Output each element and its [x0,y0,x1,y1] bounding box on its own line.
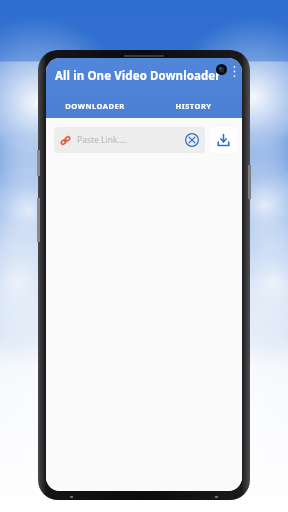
button[interactable]: Clear [185,133,199,147]
staticText: All in One Video Downloader [55,68,221,84]
staticText: Paste Link.... [77,134,127,146]
staticText: HISTORY [175,101,212,111]
staticText: DOWNLOADER [65,101,125,111]
button[interactable]: All in One Video Downloader [46,58,242,94]
button[interactable]: More options [226,60,242,82]
button[interactable]: DOWNLOADER [46,94,144,118]
button[interactable]: Paste Link.... [54,127,205,153]
button[interactable]: Download [210,127,236,153]
button[interactable]: HISTORY [144,94,242,118]
